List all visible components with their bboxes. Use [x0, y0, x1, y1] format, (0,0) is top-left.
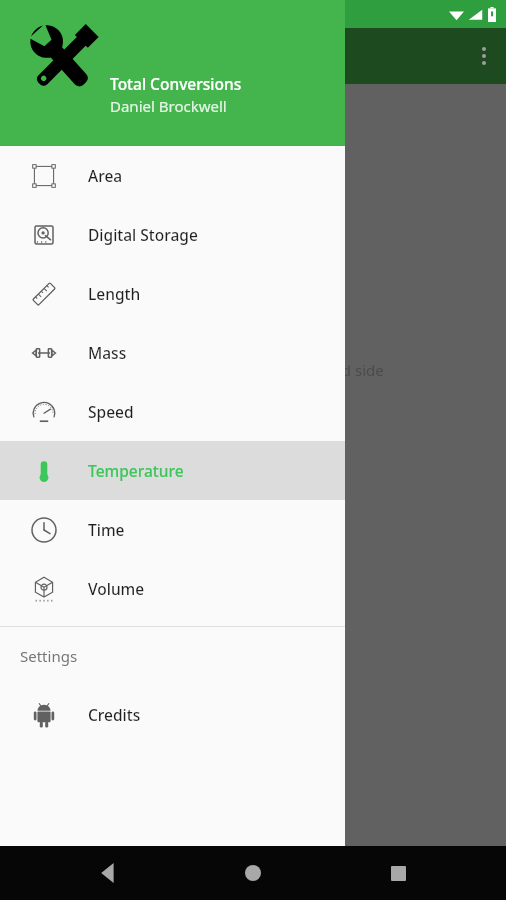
button[interactable]: Volume [0, 559, 345, 618]
staticText: Area [88, 165, 123, 186]
staticText: Total Conversions [110, 73, 242, 94]
button[interactable]: Credits [0, 685, 345, 744]
other: Home [245, 865, 261, 881]
button[interactable]: Temperature [0, 441, 345, 500]
staticText: Settings [20, 646, 78, 666]
staticText: Speed [88, 401, 134, 422]
staticText: Time [88, 519, 125, 540]
staticText: Volume [88, 578, 145, 599]
button[interactable]: Mass [0, 323, 345, 382]
staticText: Mass [88, 342, 127, 363]
staticText: Digital Storage [88, 224, 198, 245]
button[interactable]: Digital Storage [0, 205, 345, 264]
staticText: …d side [330, 360, 384, 380]
button[interactable]: Time [0, 500, 345, 559]
staticText: Temperature [88, 460, 184, 481]
staticText: Length [88, 283, 141, 304]
staticText: Credits [88, 704, 141, 725]
button[interactable]: Length [0, 264, 345, 323]
other: Back [98, 863, 118, 883]
staticText: Daniel Brockwell [110, 96, 227, 116]
button[interactable]: Area [0, 146, 345, 205]
other: Recents [391, 866, 406, 881]
button[interactable]: Speed [0, 382, 345, 441]
